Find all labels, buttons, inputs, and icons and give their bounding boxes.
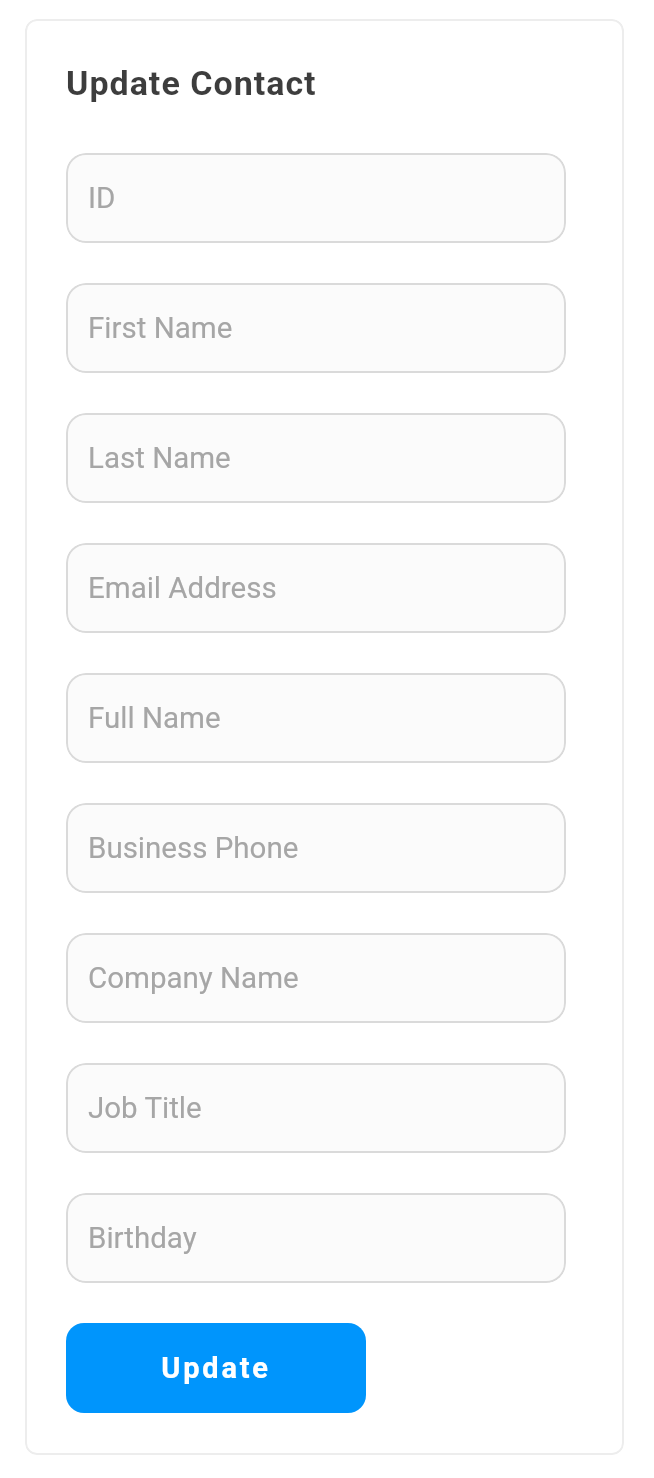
button[interactable]: Company Name [66,933,566,1023]
staticText: Update [161,1351,271,1385]
staticText: First Name [88,311,233,346]
button[interactable]: First Name [66,283,566,373]
button[interactable]: Job Title [66,1063,566,1153]
button[interactable]: Business Phone [66,803,566,893]
staticText: Company Name [88,961,299,996]
button[interactable]: Last Name [66,413,566,503]
button[interactable]: Update [66,1323,366,1413]
staticText: Business Phone [88,831,299,866]
staticText: Job Title [88,1091,202,1126]
staticText: Last Name [88,441,231,476]
staticText: Full Name [88,701,221,736]
button[interactable]: Full Name [66,673,566,763]
staticText: Update Contact [66,63,317,103]
staticText: Birthday [88,1221,197,1256]
button[interactable]: Birthday [66,1193,566,1283]
staticText: Email Address [88,571,277,606]
staticText: ID [88,181,116,216]
button[interactable]: ID [66,153,566,243]
button[interactable]: Email Address [66,543,566,633]
